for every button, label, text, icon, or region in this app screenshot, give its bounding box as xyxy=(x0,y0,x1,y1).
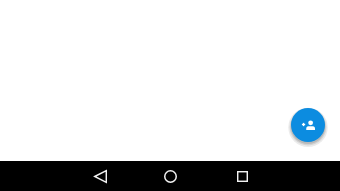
button[interactable]: Back xyxy=(83,161,117,191)
button[interactable]: Add people xyxy=(291,108,325,142)
button[interactable]: Recent apps xyxy=(225,161,259,191)
button[interactable]: Home xyxy=(153,161,187,191)
